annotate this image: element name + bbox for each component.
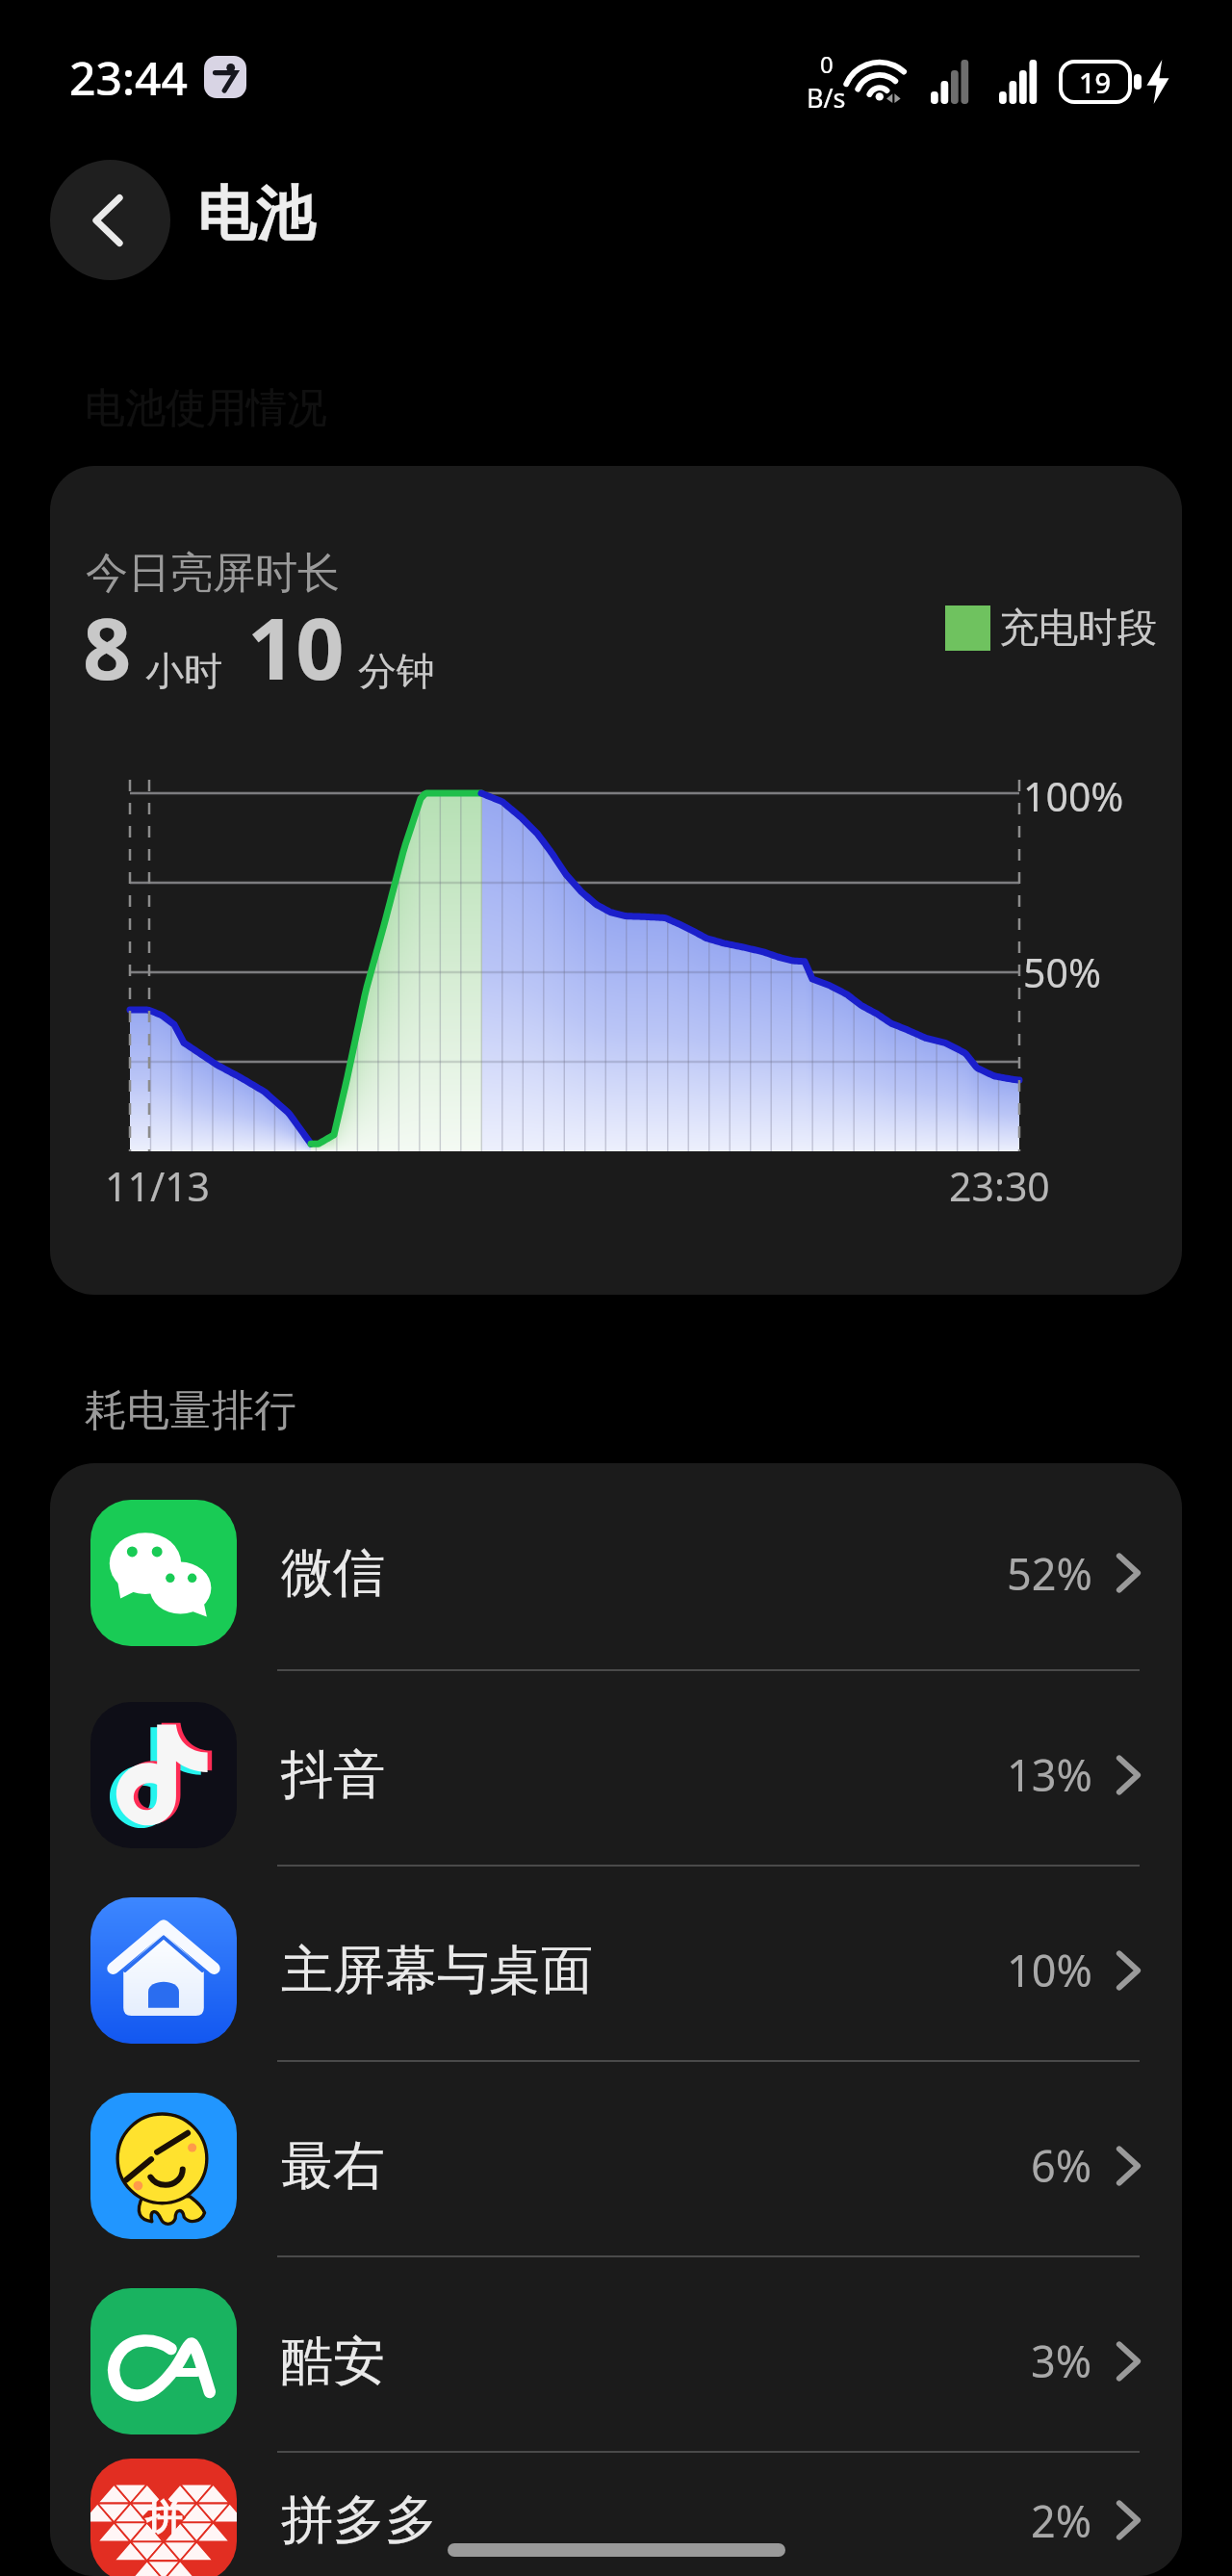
staticText: 100% <box>1023 769 1124 823</box>
staticText: 23:30 <box>949 1159 1050 1213</box>
button[interactable]: 微信 <box>50 1463 1182 1671</box>
staticText: 6% <box>1031 2136 1092 2195</box>
staticText: 23:44 <box>69 46 188 109</box>
staticText: B/s <box>807 80 846 116</box>
staticText: 8 <box>83 589 132 705</box>
staticText: 10% <box>1007 1941 1092 1999</box>
staticText: 11/13 <box>105 1159 211 1213</box>
button[interactable]: 主屏幕与桌面 <box>50 1867 1182 2062</box>
staticText: 电池使用情况 <box>85 383 327 434</box>
staticText: 0 <box>820 48 834 80</box>
staticText: 分钟 <box>358 647 435 695</box>
staticText: 抖音 <box>281 1742 385 1808</box>
staticText: 拼多多 <box>281 2487 437 2553</box>
button[interactable]: 酷安 <box>50 2257 1182 2453</box>
staticText: 小时 <box>145 647 222 695</box>
staticText: 10 <box>247 589 345 705</box>
staticText: 最右 <box>281 2133 385 2199</box>
button[interactable]: 抖音 <box>50 1671 1182 1867</box>
button[interactable]: 拼 <box>50 2453 1182 2576</box>
staticText: 50% <box>1023 945 1101 999</box>
staticText: 主屏幕与桌面 <box>281 1938 593 2003</box>
staticText: 充电时段 <box>999 604 1157 654</box>
staticText: 今日亮屏时长 <box>86 547 340 600</box>
staticText: 拼 <box>145 2494 182 2540</box>
staticText: 19 <box>1079 64 1112 101</box>
staticText: 13% <box>1007 1745 1092 1804</box>
staticText: 3% <box>1031 2331 1092 2390</box>
button[interactable]: Back <box>50 160 170 280</box>
button[interactable]: 最右 <box>50 2062 1182 2257</box>
staticText: 2% <box>1031 2491 1092 2550</box>
staticText: 酷安 <box>281 2329 385 2394</box>
staticText: 52% <box>1007 1544 1092 1603</box>
staticText: 电池 <box>197 177 315 251</box>
staticText: 耗电量排行 <box>85 1384 296 1437</box>
staticText: 微信 <box>281 1540 385 1606</box>
